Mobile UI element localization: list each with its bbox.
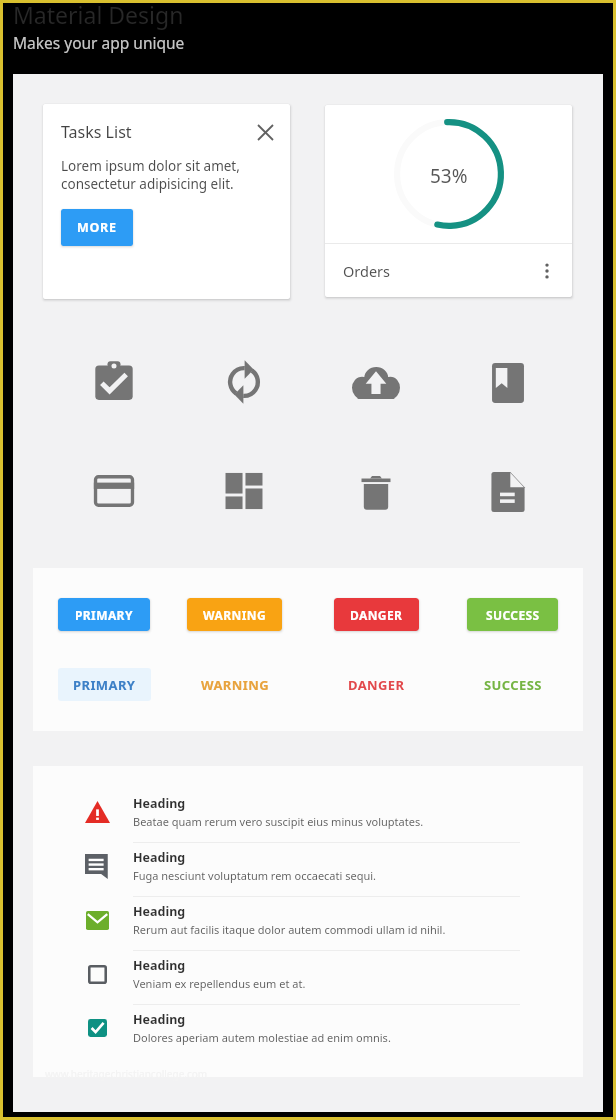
button[interactable]: More options — [536, 260, 558, 282]
staticText: WARNING — [203, 607, 266, 623]
staticText: Material Design — [13, 0, 184, 30]
staticText: Heading — [133, 1011, 186, 1028]
button[interactable]: Bookmark — [483, 357, 533, 407]
button[interactable]: Heading — [33, 796, 583, 850]
button[interactable]: PRIMARY — [58, 668, 151, 701]
staticText: Fuga nesciunt voluptatum rem occaecati s… — [133, 868, 377, 883]
button[interactable]: SUCCESS — [467, 668, 558, 701]
button[interactable]: SUCCESS — [467, 598, 558, 631]
staticText: Rerum aut facilis itaque dolor autem com… — [133, 922, 446, 937]
button[interactable]: Delete — [351, 468, 401, 518]
button[interactable]: Heading — [33, 958, 583, 1012]
button[interactable]: DANGER — [334, 598, 419, 631]
button[interactable]: MORE — [61, 209, 133, 246]
button[interactable]: 53% — [325, 105, 572, 297]
staticText: Heading — [133, 795, 186, 812]
staticText: SUCCESS — [484, 676, 542, 694]
button[interactable]: WARNING — [187, 668, 282, 701]
button[interactable]: DANGER — [334, 668, 419, 701]
staticText: DANGER — [350, 607, 403, 623]
button[interactable]: Close — [254, 121, 276, 143]
staticText: Heading — [133, 849, 186, 866]
staticText: Orders — [343, 261, 391, 281]
staticText: Tasks List — [61, 121, 132, 143]
staticText: Beatae quam rerum vero suscipit eius min… — [133, 814, 424, 829]
button[interactable]: Dashboard — [219, 466, 269, 516]
button[interactable]: Upload — [351, 357, 401, 407]
button[interactable]: Heading — [33, 904, 583, 958]
button[interactable]: Heading — [33, 850, 583, 904]
button[interactable]: Assignment — [89, 356, 139, 406]
button[interactable]: WARNING — [187, 598, 282, 631]
staticText: PRIMARY — [73, 676, 136, 694]
staticText: WARNING — [201, 676, 269, 694]
staticText: Makes your app unique — [13, 32, 185, 53]
button[interactable]: Sync — [219, 357, 269, 407]
staticText: Lorem ipsum dolor sit amet, consectetur … — [61, 157, 240, 193]
button[interactable]: Document — [483, 467, 533, 517]
staticText: DANGER — [348, 676, 405, 694]
button[interactable]: Payment — [89, 466, 139, 516]
staticText: MORE — [77, 219, 117, 236]
staticText: PRIMARY — [75, 607, 133, 623]
staticText: Heading — [133, 903, 186, 920]
staticText: Veniam ex repellendus eum et at. — [133, 976, 306, 991]
staticText: 53% — [430, 163, 468, 189]
staticText: www.heritagechristiancollege.com — [45, 1067, 208, 1081]
button[interactable]: Heading — [33, 1012, 583, 1066]
staticText: Heading — [133, 957, 186, 974]
button[interactable]: Tasks List — [43, 104, 290, 299]
button[interactable]: PRIMARY — [58, 598, 150, 631]
staticText: SUCCESS — [486, 607, 540, 623]
staticText: Dolores aperiam autem molestiae ad enim … — [133, 1030, 391, 1045]
